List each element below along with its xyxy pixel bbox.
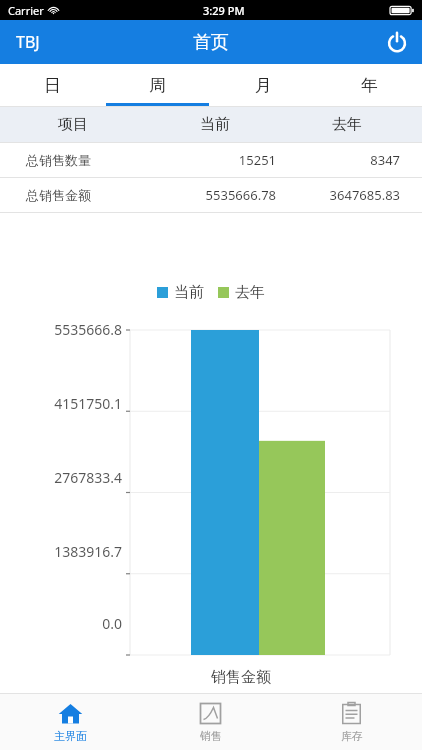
staticText: 主界面: [54, 729, 87, 743]
staticText: 1383916.7: [0, 542, 122, 561]
staticText: 3647685.83: [284, 186, 400, 204]
button[interactable]: Power / Logout: [372, 23, 422, 61]
staticText: 总销售数量: [26, 152, 146, 168]
button[interactable]: 月: [210, 64, 316, 106]
staticText: 月: [255, 75, 272, 96]
staticText: 年: [361, 75, 378, 96]
button[interactable]: 销售: [140, 694, 281, 750]
button[interactable]: 库存: [281, 694, 422, 750]
button[interactable]: 主界面: [0, 694, 140, 750]
staticText: 8347: [284, 151, 400, 169]
button[interactable]: TBJ: [0, 23, 56, 61]
staticText: 周: [149, 75, 166, 96]
staticText: 当前: [146, 115, 284, 134]
staticText: 日: [44, 75, 61, 96]
staticText: 销售金额: [211, 668, 271, 687]
staticText: 去年: [235, 283, 265, 302]
staticText: 销售: [200, 729, 222, 743]
staticText: 15251: [146, 151, 276, 169]
staticText: 首页: [193, 31, 229, 54]
staticText: Carrier: [8, 3, 44, 18]
staticText: 4151750.1: [0, 394, 122, 413]
staticText: 总销售金额: [26, 187, 146, 203]
staticText: TBJ: [16, 31, 40, 53]
button[interactable]: 总销售金额: [0, 178, 422, 212]
staticText: 0.0: [0, 614, 122, 633]
staticText: 3:29 PM: [203, 3, 245, 18]
staticText: 库存: [341, 729, 363, 743]
staticText: 5535666.8: [0, 320, 122, 339]
staticText: 当前: [174, 283, 204, 302]
button[interactable]: 年: [316, 64, 422, 106]
button[interactable]: 周: [105, 64, 210, 106]
staticText: 5535666.78: [146, 186, 276, 204]
staticText: 去年: [284, 115, 410, 134]
button[interactable]: 日: [0, 64, 105, 106]
button[interactable]: 总销售数量: [0, 143, 422, 177]
staticText: 2767833.4: [0, 468, 122, 487]
staticText: 项目: [0, 115, 146, 134]
